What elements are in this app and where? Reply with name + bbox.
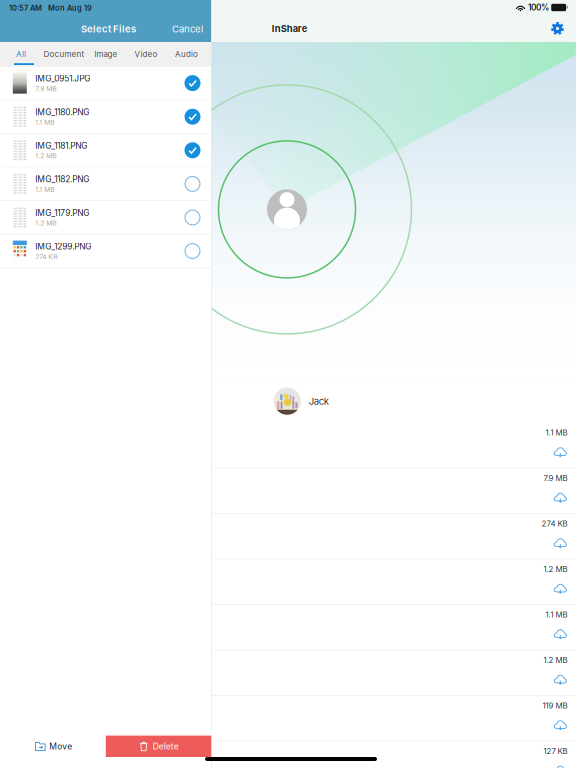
staticText: 100%: [528, 2, 549, 12]
staticText: 1.1 MB: [35, 185, 54, 194]
staticText: IMG_1179.PNG: [35, 208, 89, 218]
button[interactable]: IMG_1180.PNG: [0, 100, 211, 134]
staticText: 1.2 MB: [543, 655, 567, 665]
button[interactable]: 7.9 MB: [212, 468, 576, 514]
staticText: 274 KB: [541, 519, 567, 528]
staticText: Mon Aug 19: [48, 3, 92, 12]
button[interactable]: Delete: [106, 736, 211, 757]
staticText: InShare: [272, 23, 308, 34]
staticText: All: [16, 49, 26, 59]
staticText: 127 KB: [543, 746, 567, 756]
button[interactable]: IMG_1182.PNG: [0, 167, 211, 201]
button[interactable]: Move: [30, 736, 76, 757]
staticText: Cancel: [172, 23, 203, 35]
button[interactable]: 119 MB: [212, 696, 576, 741]
button[interactable]: Video: [136, 42, 156, 66]
button[interactable]: 1.1 MB: [212, 605, 576, 650]
button[interactable]: Image: [95, 42, 117, 66]
staticText: 1.1 MB: [545, 610, 567, 619]
staticText: IMG_1182.PNG: [35, 174, 89, 184]
staticText: 7.9 MB: [35, 85, 56, 93]
staticText: Video: [134, 49, 157, 59]
button[interactable]: Jack: [274, 381, 329, 422]
button[interactable]: 274 KB: [212, 514, 576, 559]
staticText: 1.2 MB: [35, 219, 56, 227]
staticText: 274 KB: [35, 253, 57, 261]
button[interactable]: IMG_0951.JPG: [0, 67, 211, 100]
button[interactable]: IMG_1299.PNG: [0, 235, 211, 268]
staticText: IMG_1180.PNG: [35, 107, 89, 117]
staticText: Audio: [175, 49, 198, 59]
staticText: Move: [49, 741, 72, 751]
button[interactable]: IMG_1181.PNG: [0, 134, 211, 167]
button[interactable]: 1.2 MB: [212, 650, 576, 696]
button[interactable]: Settings: [546, 17, 569, 40]
staticText: 10:57 AM: [9, 3, 42, 12]
button[interactable]: 1.1 MB: [212, 423, 576, 468]
staticText: Document: [43, 49, 84, 59]
staticText: 119 MB: [542, 701, 567, 710]
staticText: Jack: [309, 395, 329, 407]
button[interactable]: 127 KB: [212, 741, 576, 768]
button[interactable]: Cancel: [164, 18, 211, 40]
staticText: 1.2 MB: [35, 152, 56, 160]
staticText: 1.1 MB: [545, 428, 567, 437]
staticText: IMG_1181.PNG: [35, 141, 87, 151]
staticText: Image: [94, 49, 117, 59]
staticText: Delete: [153, 741, 179, 751]
staticText: 1.2 MB: [543, 564, 567, 574]
button[interactable]: Audio: [176, 42, 197, 66]
button[interactable]: 1.2 MB: [212, 559, 576, 605]
staticText: IMG_1299.PNG: [35, 241, 91, 252]
button[interactable]: Document: [46, 42, 82, 66]
button[interactable]: IMG_1179.PNG: [0, 201, 211, 235]
staticText: IMG_0951.JPG: [35, 73, 90, 84]
button[interactable]: All: [16, 42, 26, 66]
staticText: Select Files: [81, 23, 136, 35]
staticText: 7.9 MB: [543, 473, 567, 483]
staticText: 1.1 MB: [35, 118, 54, 126]
